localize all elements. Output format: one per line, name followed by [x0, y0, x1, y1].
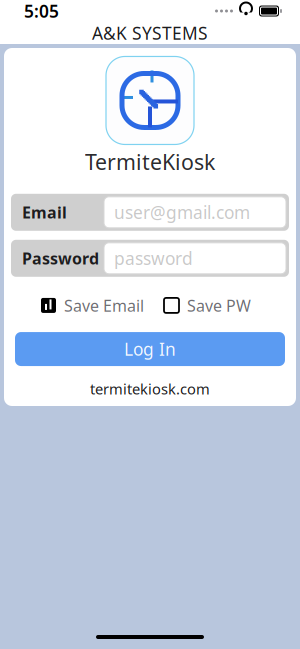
- staticText: A&K SYSTEMS: [92, 21, 208, 44]
- staticText: Save PW: [187, 295, 251, 316]
- staticText: password: [114, 247, 193, 270]
- staticText: Password: [22, 248, 99, 269]
- button[interactable]: Password: [4, 240, 296, 277]
- button[interactable]: Save Email: [41, 292, 144, 319]
- button[interactable]: Save PW: [164, 292, 251, 319]
- staticText: TermiteKiosk: [85, 147, 215, 176]
- staticText: termitekiosk.com: [90, 379, 210, 399]
- staticText: Save Email: [64, 295, 144, 316]
- staticText: user@gmail.com: [114, 201, 250, 224]
- staticText: Log In: [124, 337, 176, 360]
- button[interactable]: Log In: [4, 332, 296, 366]
- staticText: 5:05: [24, 0, 59, 22]
- button[interactable]: Email: [4, 194, 296, 231]
- staticText: Email: [22, 202, 67, 223]
- button[interactable]: termitekiosk.com: [4, 371, 296, 407]
